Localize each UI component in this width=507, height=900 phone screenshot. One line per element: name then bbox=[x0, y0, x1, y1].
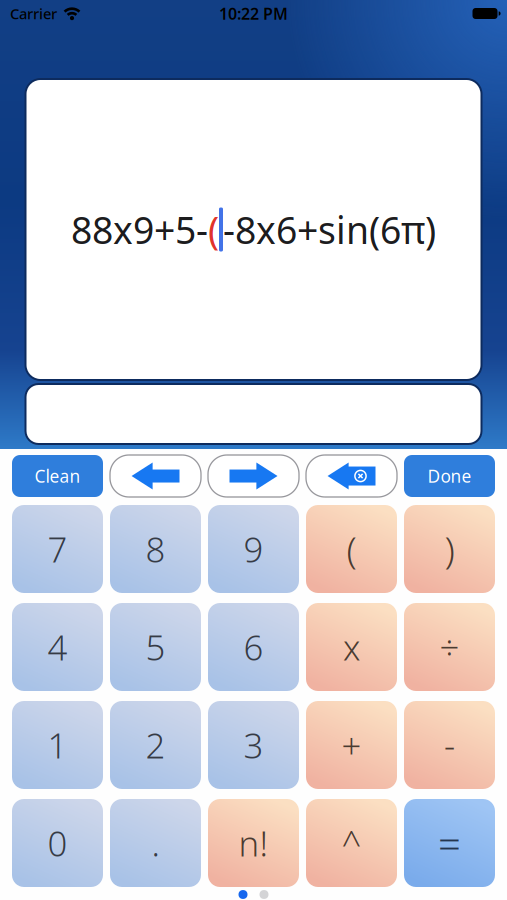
staticText: 5 bbox=[145, 624, 165, 670]
button[interactable]: 2 bbox=[110, 701, 201, 789]
staticText: = bbox=[438, 816, 461, 869]
button[interactable]: n! bbox=[208, 799, 299, 887]
button[interactable]: Move cursor left bbox=[110, 455, 201, 497]
staticText: Carrier bbox=[10, 4, 57, 23]
button[interactable]: ) bbox=[404, 505, 495, 593]
button[interactable]: + bbox=[306, 701, 397, 789]
button[interactable]: Clean bbox=[12, 455, 103, 497]
button[interactable]: 9 bbox=[208, 505, 299, 593]
staticText: - bbox=[444, 722, 455, 768]
staticText: n! bbox=[238, 820, 268, 866]
staticText: ( bbox=[346, 524, 356, 574]
button[interactable]: = bbox=[404, 799, 495, 887]
button[interactable]: Backspace bbox=[306, 455, 397, 497]
button[interactable]: 8 bbox=[110, 505, 201, 593]
staticText: 1 bbox=[47, 722, 67, 768]
staticText: 9 bbox=[243, 526, 263, 572]
button[interactable]: 6 bbox=[208, 603, 299, 691]
staticText: 6 bbox=[243, 624, 263, 670]
button[interactable]: 7 bbox=[12, 505, 103, 593]
staticText: Done bbox=[427, 464, 471, 487]
staticText: ) bbox=[444, 524, 454, 574]
staticText: 3 bbox=[243, 722, 263, 768]
staticText: ÷ bbox=[439, 624, 459, 670]
staticText: Clean bbox=[34, 464, 80, 487]
button[interactable]: ÷ bbox=[404, 603, 495, 691]
staticText: ^ bbox=[341, 820, 361, 866]
staticText: 7 bbox=[47, 526, 67, 572]
staticText: 10:22 PM bbox=[219, 3, 288, 24]
button[interactable]: 0 bbox=[12, 799, 103, 887]
staticText: ( bbox=[208, 205, 219, 254]
button[interactable]: ^ bbox=[306, 799, 397, 887]
button[interactable]: - bbox=[404, 701, 495, 789]
staticText: -8x6+sin(6π) bbox=[223, 205, 436, 254]
button[interactable]: 3 bbox=[208, 701, 299, 789]
button[interactable]: Page 1 of 2 bbox=[238, 890, 247, 899]
button[interactable]: 4 bbox=[12, 603, 103, 691]
button[interactable]: x bbox=[306, 603, 397, 691]
staticText: 4 bbox=[47, 624, 67, 670]
button[interactable]: 1 bbox=[12, 701, 103, 789]
staticText: x bbox=[343, 624, 360, 670]
staticText: . bbox=[151, 820, 159, 866]
button[interactable]: ( bbox=[306, 505, 397, 593]
button[interactable]: Move cursor right bbox=[208, 455, 299, 497]
staticText: 2 bbox=[145, 722, 165, 768]
button[interactable]: . bbox=[110, 799, 201, 887]
staticText: 88x9+5- bbox=[71, 205, 208, 254]
staticText: 8 bbox=[145, 526, 165, 572]
staticText: + bbox=[341, 722, 361, 768]
staticText: 0 bbox=[47, 820, 67, 866]
button[interactable]: Done bbox=[404, 455, 495, 497]
button[interactable]: 5 bbox=[110, 603, 201, 691]
button[interactable]: Page 2 of 2 bbox=[259, 890, 268, 899]
